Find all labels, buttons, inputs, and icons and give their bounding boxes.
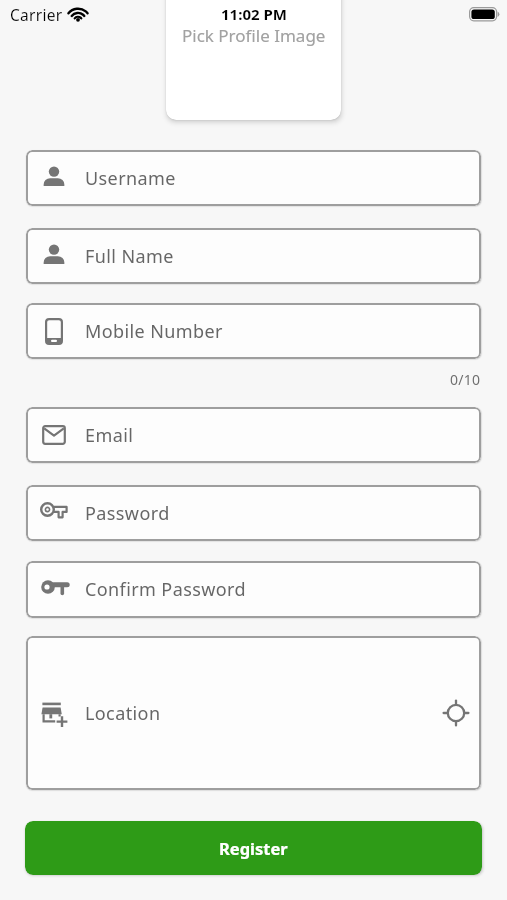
button[interactable]: Password: [26, 485, 481, 541]
staticText: Confirm Password: [85, 577, 246, 602]
button[interactable]: Full Name: [26, 228, 481, 284]
staticText: 0/10: [450, 370, 481, 389]
button[interactable]: Email: [26, 407, 481, 463]
staticText: Location: [85, 701, 161, 726]
button[interactable]: Username: [26, 150, 481, 206]
button[interactable]: Mobile Number: [26, 303, 481, 359]
button[interactable]: Pick Profile Image: [166, 0, 341, 120]
staticText: Email: [85, 423, 134, 448]
button[interactable]: Confirm Password: [26, 561, 481, 618]
staticText: Register: [219, 837, 288, 859]
staticText: 11:02 PM: [221, 4, 287, 24]
button[interactable]: Location: [26, 636, 481, 790]
staticText: Carrier: [10, 4, 63, 25]
staticText: Full Name: [85, 244, 174, 269]
staticText: Username: [85, 166, 176, 191]
staticText: Mobile Number: [85, 319, 223, 344]
staticText: Password: [85, 501, 170, 526]
button[interactable]: Register: [25, 821, 482, 875]
staticText: Pick Profile Image: [182, 24, 326, 47]
